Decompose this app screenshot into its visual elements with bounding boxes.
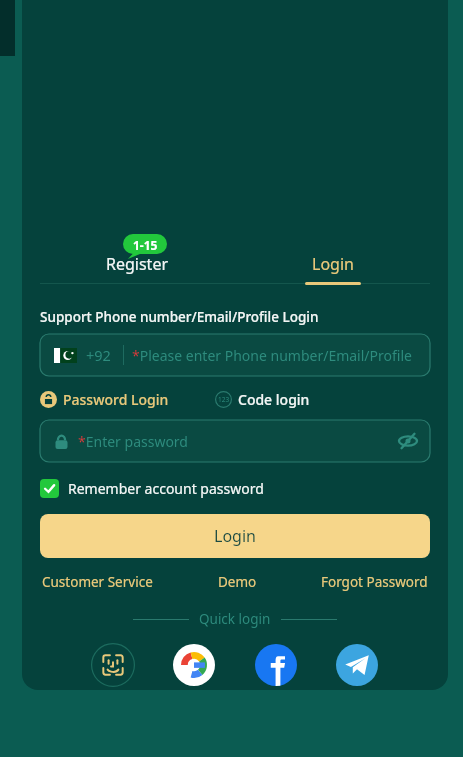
button[interactable]: Telegram login [334,642,380,688]
staticText: Quick login [199,610,271,628]
staticText: Code login [238,390,310,409]
staticText: +92 [86,345,111,365]
staticText: Login [214,525,256,547]
staticText: 1-15 [133,237,158,253]
button[interactable]: 123 [215,390,310,409]
button[interactable]: *Enter password [40,420,430,462]
staticText: *Please enter Phone number/Email/Profile [132,346,412,365]
button[interactable]: Register [40,232,235,294]
button[interactable]: Google login [171,642,217,688]
staticText: 123 [218,395,230,404]
button[interactable]: Face ID login [90,642,136,688]
staticText: Forgot Password [321,573,428,591]
staticText: Customer Service [42,573,153,591]
button[interactable]: Show password [390,423,426,459]
staticText: Register [106,253,169,275]
staticText: Support Phone number/Email/Profile Login [40,308,319,326]
button[interactable]: Customer Service [40,571,155,593]
staticText: Login [312,253,354,275]
button[interactable]: +92 [40,334,430,376]
staticText: Password Login [63,390,169,409]
button[interactable]: Forgot Password [319,571,430,593]
button[interactable]: Password Login [40,390,169,409]
staticText: Demo [218,573,257,591]
button[interactable]: Demo [216,571,259,593]
button[interactable]: Facebook login [253,642,299,688]
button[interactable]: Login [40,514,430,558]
button[interactable]: Remember account password [40,479,264,498]
staticText: Remember account password [68,479,264,498]
button[interactable]: Login [235,232,430,294]
staticText: *Enter password [78,432,188,451]
